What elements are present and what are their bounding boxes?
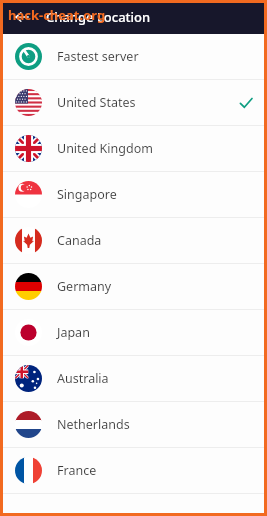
staticText: hack-cheat.org	[8, 6, 106, 24]
staticText: Fastest server	[57, 48, 239, 65]
staticText: Change Location	[46, 8, 151, 26]
button[interactable]: Germany	[0, 264, 267, 310]
staticText: Singapore	[57, 186, 239, 203]
staticText: Germany	[57, 278, 239, 295]
button[interactable]: United States	[0, 80, 267, 126]
button[interactable]: Singapore	[0, 172, 267, 218]
button[interactable]: United Kingdom	[0, 126, 267, 172]
button[interactable]: France	[0, 448, 267, 494]
staticText: Japan	[57, 324, 239, 341]
staticText: Australia	[57, 370, 239, 387]
staticText: Netherlands	[57, 416, 239, 433]
button[interactable]: Fastest server	[0, 34, 267, 80]
button[interactable]: Netherlands	[0, 402, 267, 448]
staticText: United States	[57, 94, 239, 111]
button[interactable]: Canada	[0, 218, 267, 264]
staticText: France	[57, 462, 239, 479]
button[interactable]: Australia	[0, 356, 267, 402]
staticText: Canada	[57, 232, 239, 249]
button[interactable]: Japan	[0, 310, 267, 356]
button[interactable]: Back	[8, 3, 36, 31]
staticText: United Kingdom	[57, 140, 239, 157]
